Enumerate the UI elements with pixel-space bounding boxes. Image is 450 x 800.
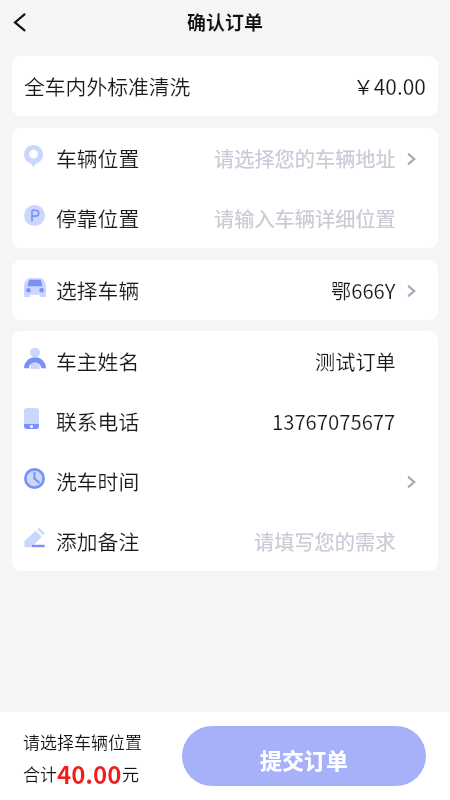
button[interactable]: 联系电话 — [12, 391, 438, 451]
button[interactable]: 洗车时间 — [12, 451, 438, 511]
staticText: 鄂666Y — [331, 276, 396, 305]
staticText: 全车内外标准清洗 — [24, 71, 191, 101]
staticText: 13767075677 — [272, 407, 396, 436]
staticText: 联系电话 — [56, 406, 140, 436]
staticText: 车辆位置 — [56, 143, 140, 173]
staticText: 停靠位置 — [56, 203, 140, 233]
button[interactable]: 车辆位置 — [12, 128, 438, 188]
staticText: 车主姓名 — [56, 346, 140, 376]
button[interactable]: 提交订单 — [182, 726, 426, 786]
staticText: 元 — [122, 761, 139, 786]
staticText: 添加备注 — [56, 526, 140, 556]
button[interactable]: 停靠位置 — [12, 188, 438, 248]
staticText: 提交订单 — [260, 743, 349, 775]
button[interactable]: 车主姓名 — [12, 331, 438, 391]
staticText: 确认订单 — [187, 8, 264, 36]
staticText: 洗车时间 — [56, 466, 140, 496]
button[interactable]: 全车内外标准清洗 — [12, 56, 438, 116]
staticText: ￥40.00 — [353, 71, 426, 101]
staticText: 请输入车辆详细位置 — [214, 204, 396, 233]
staticText: 合计 — [23, 761, 57, 786]
staticText: 40.00 — [57, 756, 122, 791]
staticText: 请填写您的需求 — [254, 527, 396, 556]
button[interactable]: Back — [0, 2, 40, 42]
staticText: 选择车辆 — [56, 275, 140, 305]
staticText: 请选择您的车辆地址 — [214, 144, 396, 173]
staticText: 请选择车辆位置 — [23, 729, 142, 754]
staticText: 测试订单 — [315, 347, 396, 376]
button[interactable]: 选择车辆 — [12, 260, 438, 320]
button[interactable]: 添加备注 — [12, 511, 438, 571]
